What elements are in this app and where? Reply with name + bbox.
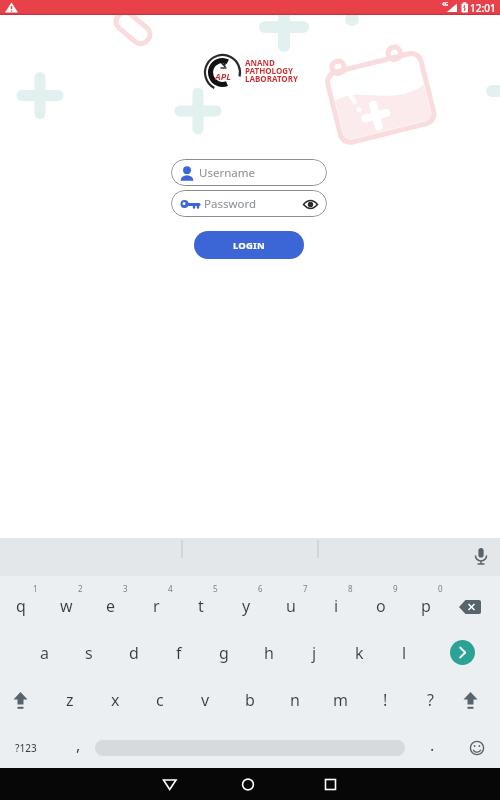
button[interactable]: z — [53, 685, 87, 715]
button[interactable]: u — [274, 591, 308, 621]
staticText: 9 — [393, 583, 398, 594]
button[interactable]: s — [72, 638, 106, 668]
staticText: 8 — [348, 583, 353, 594]
button[interactable]: r — [139, 591, 173, 621]
button[interactable]: k — [342, 638, 376, 668]
staticText: 1 — [33, 583, 38, 594]
button[interactable]: t — [184, 591, 218, 621]
button[interactable]: m — [323, 685, 357, 715]
staticText: i — [334, 595, 339, 617]
button[interactable] — [469, 740, 485, 756]
button[interactable]: v — [188, 685, 222, 715]
button[interactable] — [450, 640, 475, 665]
button[interactable]: ? — [413, 685, 447, 715]
button[interactable]: l — [387, 638, 421, 668]
staticText: t — [198, 595, 204, 617]
staticText: ! — [383, 689, 388, 711]
button[interactable]: LOGIN — [194, 231, 304, 259]
staticText: , — [76, 734, 81, 756]
staticText: r — [153, 595, 160, 617]
staticText: p — [421, 595, 431, 617]
button[interactable]: h — [252, 638, 286, 668]
staticText: Username — [199, 165, 255, 181]
button[interactable]: q — [4, 591, 38, 621]
staticText: q — [16, 595, 26, 617]
staticText: n — [290, 689, 300, 711]
button[interactable]: w — [49, 591, 83, 621]
button[interactable]: f — [162, 638, 196, 668]
staticText: m — [333, 689, 348, 711]
staticText: z — [66, 689, 74, 711]
button[interactable] — [11, 691, 30, 711]
button[interactable]: c — [143, 685, 177, 715]
staticText: g — [219, 642, 229, 664]
staticText: w — [60, 595, 73, 617]
button[interactable]: g — [207, 638, 241, 668]
staticText: 4G — [442, 1, 449, 8]
button[interactable] — [468, 542, 496, 572]
staticText: . — [430, 734, 435, 756]
staticText: 0 — [438, 583, 443, 594]
staticText: o — [376, 595, 386, 617]
staticText: a — [40, 642, 49, 664]
staticText: l — [402, 642, 407, 664]
button[interactable]: a — [27, 638, 61, 668]
staticText: 3 — [123, 583, 128, 594]
button[interactable]: ?123 — [6, 735, 46, 761]
staticText: LABORATORY — [245, 73, 298, 84]
button[interactable]: i — [319, 591, 353, 621]
button[interactable] — [303, 199, 318, 210]
staticText: APL — [215, 70, 231, 82]
button[interactable] — [461, 691, 480, 711]
button[interactable]: Password — [171, 190, 327, 217]
staticText: d — [129, 642, 139, 664]
staticText: PATHOLOGY — [245, 65, 294, 76]
staticText: ? — [427, 689, 434, 711]
button[interactable]: n — [278, 685, 312, 715]
button[interactable] — [228, 770, 268, 798]
staticText: k — [355, 642, 364, 664]
button[interactable] — [150, 770, 190, 798]
button[interactable]: y — [229, 591, 263, 621]
staticText: e — [106, 595, 116, 617]
staticText: 5 — [213, 583, 218, 594]
staticText: f — [176, 642, 182, 664]
staticText: ?123 — [15, 741, 37, 755]
staticText: 12:01 — [470, 1, 496, 15]
staticText: h — [264, 642, 274, 664]
staticText: y — [242, 595, 251, 617]
button[interactable] — [306, 770, 346, 798]
button[interactable]: o — [364, 591, 398, 621]
button[interactable]: b — [233, 685, 267, 715]
button[interactable]: . — [415, 730, 449, 760]
button[interactable]: ! — [368, 685, 402, 715]
staticText: 2 — [78, 583, 83, 594]
staticText: b — [245, 689, 255, 711]
staticText: j — [312, 642, 317, 664]
staticText: u — [286, 595, 296, 617]
button[interactable]: x — [98, 685, 132, 715]
button[interactable] — [448, 594, 488, 620]
staticText: c — [156, 689, 164, 711]
staticText: Password — [204, 196, 257, 212]
button[interactable]: , — [61, 730, 95, 760]
button[interactable]: e — [94, 591, 128, 621]
staticText: ANAND — [245, 57, 275, 68]
button[interactable]: j — [297, 638, 331, 668]
button[interactable]: p — [409, 591, 443, 621]
staticText: v — [201, 689, 210, 711]
staticText: x — [111, 689, 120, 711]
staticText: 4 — [168, 583, 173, 594]
button[interactable]: d — [117, 638, 151, 668]
staticText: 7 — [303, 583, 308, 594]
staticText: LOGIN — [233, 239, 265, 252]
button[interactable]: Username — [171, 159, 327, 186]
staticText: 6 — [258, 583, 263, 594]
staticText: s — [85, 642, 93, 664]
